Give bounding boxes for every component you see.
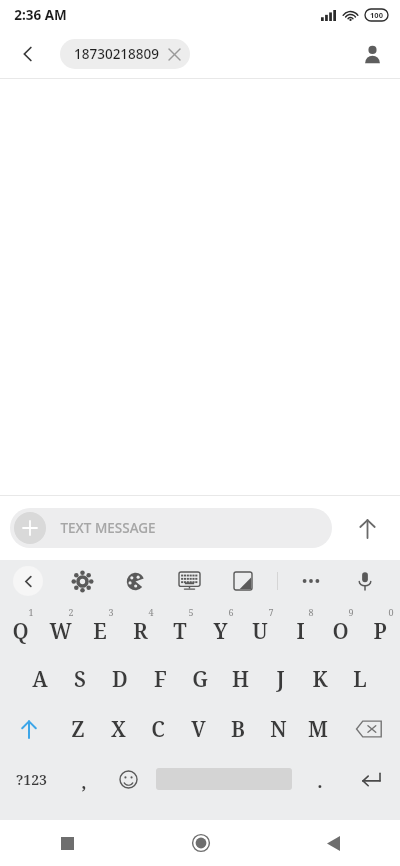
button[interactable]: P — [360, 602, 400, 654]
staticText: T — [173, 617, 187, 646]
button[interactable]: Back — [267, 820, 400, 866]
staticText: 9 — [348, 606, 354, 618]
staticText: , — [81, 770, 87, 795]
button[interactable]: ?123 — [0, 754, 62, 804]
button[interactable]: X — [98, 704, 138, 754]
staticText: R — [133, 617, 148, 646]
button[interactable]: Recents — [0, 820, 134, 866]
staticText: W — [49, 617, 72, 646]
button[interactable]: . — [298, 754, 342, 804]
button[interactable]: R — [120, 602, 160, 654]
button[interactable]: S — [60, 654, 100, 704]
staticText: Q — [12, 617, 29, 646]
button[interactable]: N — [258, 704, 298, 754]
button[interactable]: T — [160, 602, 200, 654]
button[interactable]: Theme — [109, 560, 162, 602]
staticText: P — [373, 617, 387, 646]
staticText: M — [308, 715, 328, 744]
staticText: X — [111, 715, 126, 744]
staticText: N — [270, 715, 287, 744]
staticText: C — [151, 715, 165, 744]
staticText: L — [353, 665, 367, 694]
button[interactable]: V — [178, 704, 218, 754]
button[interactable]: L — [340, 654, 380, 704]
staticText: J — [276, 665, 285, 694]
button[interactable]: G — [180, 654, 220, 704]
staticText: . — [317, 769, 323, 794]
button[interactable]: E — [80, 602, 120, 654]
button[interactable]: Settings — [56, 560, 109, 602]
staticText: E — [93, 617, 107, 646]
staticText: 6 — [228, 606, 234, 618]
button[interactable]: D — [100, 654, 140, 704]
staticText: U — [252, 617, 268, 646]
button[interactable]: A — [20, 654, 60, 704]
button[interactable]: Resize — [216, 560, 270, 602]
staticText: D — [112, 665, 128, 694]
staticText: 8 — [308, 606, 314, 618]
staticText: 1 — [28, 606, 34, 618]
staticText: 4 — [148, 606, 154, 618]
button[interactable]: B — [218, 704, 258, 754]
button[interactable]: Q — [0, 602, 40, 654]
staticText: Z — [71, 715, 85, 744]
staticText: O — [332, 617, 349, 646]
staticText: F — [154, 665, 167, 694]
button[interactable]: Home — [134, 820, 267, 866]
button[interactable]: I — [280, 602, 320, 654]
staticText: 0 — [388, 606, 394, 618]
staticText: ?123 — [16, 770, 47, 789]
staticText: B — [231, 715, 245, 744]
staticText: 3 — [108, 606, 114, 618]
staticText: Y — [213, 617, 228, 646]
staticText: G — [192, 665, 208, 694]
button[interactable]: F — [140, 654, 180, 704]
button[interactable]: Z — [58, 704, 98, 754]
staticText: V — [191, 715, 206, 744]
button[interactable]: Voice input — [338, 560, 392, 602]
button[interactable]: Keyboard layout — [162, 560, 216, 602]
button[interactable]: Back — [6, 32, 50, 76]
button[interactable]: 18730218809 — [60, 39, 190, 69]
staticText: K — [312, 665, 328, 694]
button[interactable]: Contact — [352, 34, 392, 74]
button[interactable]: W — [40, 602, 80, 654]
button[interactable]: Collapse toolbar — [0, 560, 56, 602]
button[interactable]: H — [220, 654, 260, 704]
button[interactable]: More options — [284, 560, 338, 602]
staticText: 5 — [188, 606, 194, 618]
button[interactable]: U — [240, 602, 280, 654]
staticText: 18730218809 — [74, 45, 159, 63]
staticText: TEXT MESSAGE — [60, 519, 156, 537]
staticText: 2:36 AM — [14, 6, 67, 24]
button[interactable]: Emoji — [106, 754, 150, 804]
button[interactable]: Send — [346, 507, 388, 549]
staticText: A — [32, 665, 48, 694]
staticText: S — [74, 665, 86, 694]
staticText: 7 — [268, 606, 274, 618]
staticText: 100 — [370, 10, 383, 20]
button[interactable]: Enter — [342, 754, 400, 804]
button[interactable]: Attach — [14, 512, 46, 544]
staticText: H — [232, 665, 249, 694]
button[interactable]: M — [298, 704, 338, 754]
button[interactable]: Attach — [10, 508, 332, 548]
staticText: I — [296, 617, 305, 646]
button[interactable]: Y — [200, 602, 240, 654]
button[interactable]: C — [138, 704, 178, 754]
button[interactable]: Backspace — [338, 704, 400, 754]
button[interactable]: O — [320, 602, 360, 654]
button[interactable]: Shift — [0, 704, 58, 754]
button[interactable]: , — [62, 754, 106, 804]
staticText: 2 — [68, 606, 74, 618]
button[interactable]: K — [300, 654, 340, 704]
button[interactable]: J — [260, 654, 300, 704]
